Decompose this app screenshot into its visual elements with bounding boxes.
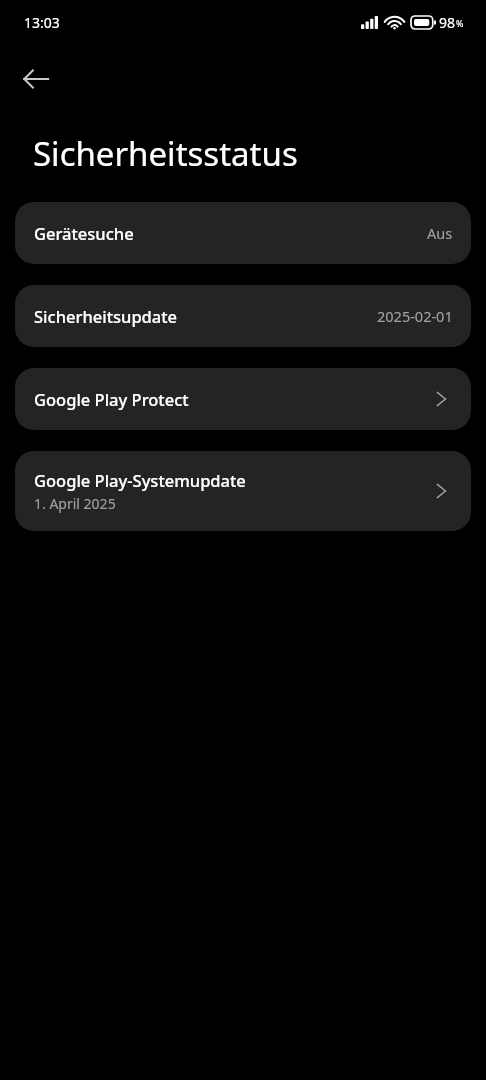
staticText: 1. April 2025	[34, 494, 116, 513]
button[interactable]: Gerätesuche	[15, 202, 471, 264]
staticText: Sicherheitsupdate	[34, 305, 178, 327]
staticText: %	[456, 17, 464, 29]
staticText: Google Play-Systemupdate	[34, 469, 246, 491]
button[interactable]: Sicherheitsupdate	[15, 285, 471, 347]
staticText: Sicherheitsstatus	[33, 131, 298, 176]
staticText: 98	[439, 13, 456, 32]
staticText: Aus	[427, 223, 453, 243]
button[interactable]: Google Play-Systemupdate	[15, 451, 471, 531]
staticText: Gerätesuche	[34, 222, 134, 244]
staticText: 2025-02-01	[377, 306, 453, 326]
button[interactable]: Back	[12, 55, 60, 103]
staticText: Google Play Protect	[34, 388, 189, 410]
staticText: 13:03	[24, 13, 60, 32]
button[interactable]: Google Play Protect	[15, 368, 471, 430]
